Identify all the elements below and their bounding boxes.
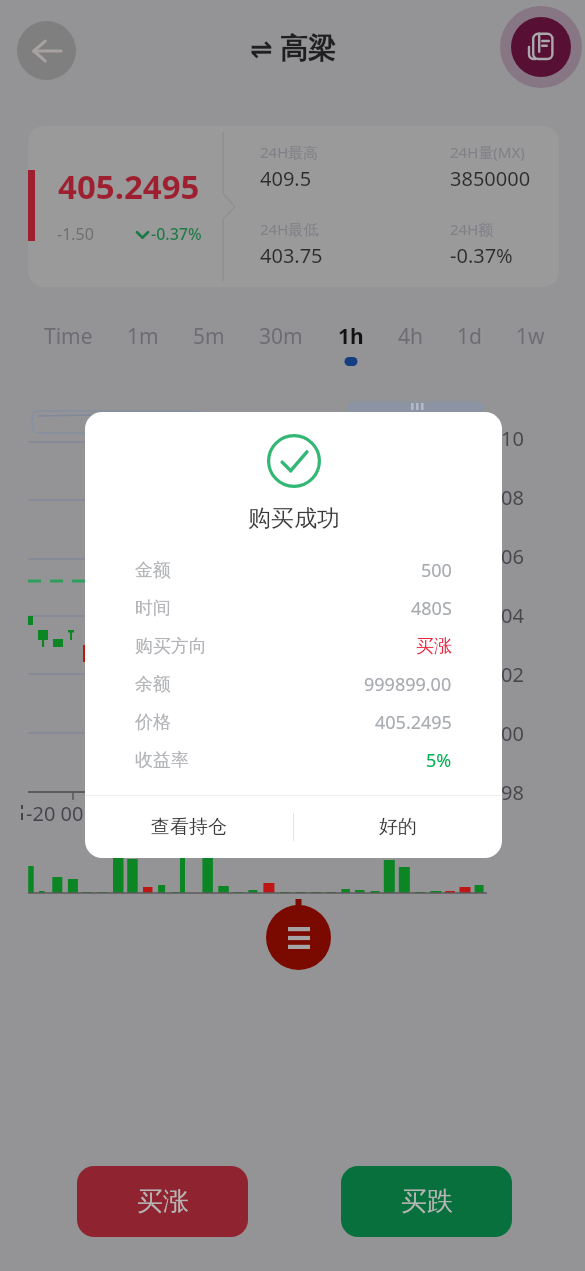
staticText: 购买成功 (248, 504, 340, 533)
staticText: 00 (501, 720, 524, 747)
staticText: -0.37% (450, 242, 513, 269)
staticText: 购买方向 (135, 635, 207, 658)
staticText: 405.2495 (375, 710, 452, 735)
staticText: 余额 (135, 673, 171, 696)
button[interactable]: 1w (513, 302, 548, 377)
staticText: 价格 (135, 711, 171, 734)
staticText: 买涨 (416, 635, 452, 658)
staticText: 409.5 (260, 165, 312, 192)
staticText: 1m (127, 322, 159, 351)
staticText: 查看持仓 (151, 815, 227, 839)
button[interactable]: 1d (454, 302, 485, 377)
staticText: 1d (457, 322, 482, 351)
staticText: 24H量(MX) (450, 142, 525, 162)
button[interactable]: 好的 (294, 796, 502, 858)
button[interactable]: Menu (266, 905, 331, 970)
staticText: 403.75 (260, 242, 323, 269)
staticText: 02 (501, 661, 524, 688)
button[interactable]: 1m (124, 302, 162, 377)
staticText: 4h (398, 322, 423, 351)
staticText: 500 (421, 558, 452, 583)
staticText: 1h (338, 322, 364, 351)
staticText: 06 (501, 543, 524, 570)
staticText: 5% (426, 748, 452, 773)
staticText: 3850000 (450, 165, 531, 192)
staticText: 24H最低 (260, 219, 319, 239)
staticText: 04 (501, 602, 524, 629)
staticText: 999899.00 (364, 672, 452, 697)
staticText: -20 00 (26, 800, 84, 827)
staticText: 480S (411, 596, 452, 621)
button[interactable]: 30m (256, 302, 306, 377)
button[interactable]: 4h (395, 302, 426, 377)
button[interactable]: 5m (190, 302, 228, 377)
staticText: 1w (516, 322, 545, 351)
staticText: 时间 (135, 597, 171, 620)
staticText: Time (44, 322, 93, 351)
staticText: 高梁 (280, 31, 336, 66)
staticText: 买涨 (137, 1185, 189, 1218)
staticText: 08 (501, 484, 524, 511)
staticText: 405.2495 (58, 164, 200, 209)
button[interactable]: 查看持仓 (85, 796, 293, 858)
staticText: 24H最高 (260, 142, 319, 162)
staticText: 收益率 (135, 749, 189, 772)
staticText: ⇌ (250, 33, 273, 64)
staticText: 金额 (135, 559, 171, 582)
button[interactable]: Time (41, 302, 96, 377)
button[interactable]: Back (17, 21, 76, 80)
staticText: 买跌 (401, 1185, 453, 1218)
staticText: 5m (193, 322, 225, 351)
button[interactable]: 买涨 (77, 1166, 248, 1237)
staticText: 98 (501, 779, 524, 806)
button[interactable]: 买跌 (341, 1166, 512, 1237)
staticText: 24H额 (450, 219, 494, 239)
staticText: 好的 (379, 815, 417, 839)
button[interactable]: Orders (511, 17, 571, 77)
staticText: -1.50 (57, 223, 94, 245)
staticText: 30m (259, 322, 303, 351)
button[interactable]: 1h (335, 302, 367, 384)
staticText: -0.37% (151, 223, 202, 245)
staticText: 10 (501, 425, 524, 452)
